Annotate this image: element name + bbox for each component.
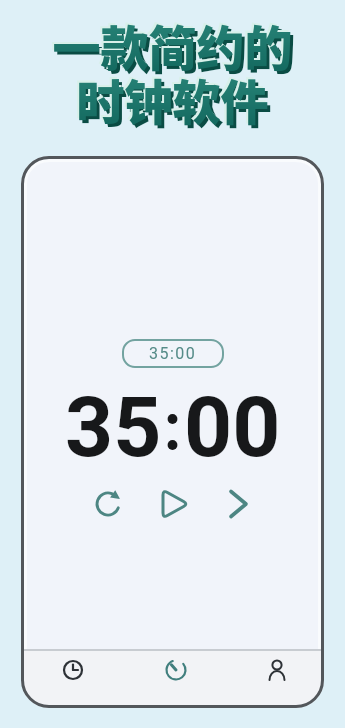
staticText: 时钟软件 (79, 67, 272, 137)
staticText: 一款简约的 (50, 8, 291, 78)
staticText: 一款简约的 (55, 13, 296, 83)
staticText: 时钟软件 (74, 62, 267, 132)
button[interactable] (255, 647, 299, 691)
button[interactable] (155, 487, 189, 521)
staticText: 35:00 (149, 344, 197, 363)
button[interactable]: 35 (21, 378, 324, 458)
button[interactable] (51, 648, 95, 692)
staticText: 时钟软件 (76, 64, 269, 134)
staticText: 00 (184, 378, 281, 458)
staticText: 一款简约的 (52, 10, 293, 80)
button[interactable] (222, 487, 256, 521)
button[interactable] (91, 487, 125, 521)
button[interactable]: 35:00 (122, 339, 224, 368)
button[interactable] (154, 648, 198, 692)
staticText: 35 (65, 378, 162, 458)
